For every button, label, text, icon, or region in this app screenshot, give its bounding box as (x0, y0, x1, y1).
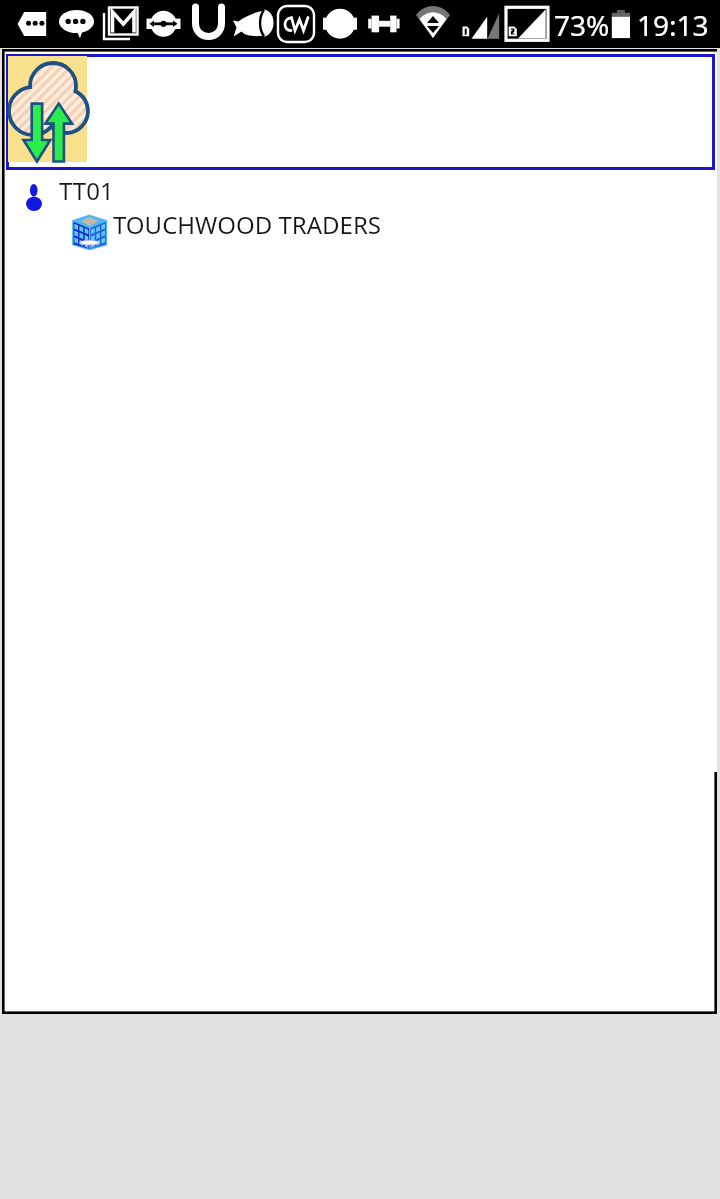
staticText: TT01 (59, 174, 114, 207)
staticText: TOUCHWOOD TRADERS (113, 208, 382, 241)
button[interactable]: TOUCHWOOD TRADERS (5, 210, 714, 250)
button[interactable]: TT01 (5, 173, 714, 210)
staticText: 19:13 (637, 6, 709, 44)
staticText: 73% (554, 6, 610, 44)
button[interactable]: Cloud sync (6, 54, 715, 170)
